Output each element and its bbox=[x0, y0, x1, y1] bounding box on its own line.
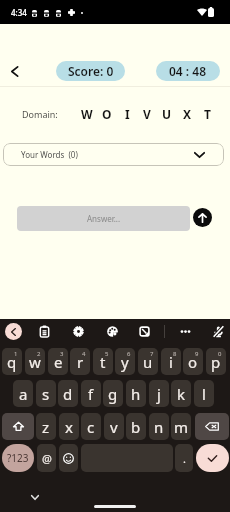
staticText: 6 bbox=[127, 350, 131, 358]
staticText: 0 bbox=[218, 350, 222, 358]
button[interactable]: x bbox=[59, 413, 79, 440]
staticText: 7 bbox=[150, 350, 154, 358]
button[interactable]: Voice input off bbox=[209, 322, 227, 340]
button[interactable]: f bbox=[81, 380, 101, 407]
button[interactable]: s bbox=[36, 380, 56, 407]
staticText: m bbox=[174, 417, 189, 437]
staticText: e bbox=[54, 352, 63, 372]
staticText: y bbox=[121, 352, 129, 372]
button[interactable]: r bbox=[70, 348, 90, 375]
staticText: x bbox=[65, 417, 73, 437]
staticText: 1 bbox=[14, 350, 18, 358]
staticText: I bbox=[125, 106, 130, 121]
staticText: g bbox=[108, 384, 118, 404]
staticText: @ bbox=[42, 451, 52, 466]
button[interactable]: g bbox=[103, 380, 123, 407]
staticText: i bbox=[169, 352, 173, 372]
staticText: u bbox=[143, 352, 153, 372]
button[interactable]: @ bbox=[37, 444, 56, 472]
staticText: r bbox=[77, 352, 84, 372]
staticText: W bbox=[81, 106, 93, 121]
button[interactable]: Theme bbox=[103, 322, 121, 340]
button[interactable]: p bbox=[206, 348, 226, 375]
staticText: k bbox=[177, 384, 186, 404]
button[interactable]: u bbox=[138, 348, 158, 375]
staticText: Domain: bbox=[22, 108, 58, 120]
button[interactable]: Emoji bbox=[59, 444, 78, 472]
staticText: . bbox=[183, 451, 186, 466]
staticText: U bbox=[162, 106, 172, 121]
button[interactable]: Sticker bbox=[135, 322, 153, 340]
staticText: n bbox=[154, 417, 164, 437]
button[interactable]: j bbox=[149, 380, 169, 407]
button[interactable]: Your Words (0) bbox=[3, 143, 224, 166]
button[interactable]: h bbox=[126, 380, 146, 407]
button[interactable]: ?123 bbox=[2, 444, 34, 472]
button[interactable]: More options bbox=[176, 322, 194, 340]
staticText: a bbox=[19, 384, 28, 404]
button[interactable]: k bbox=[171, 380, 191, 407]
button[interactable]: Enter bbox=[196, 444, 229, 472]
staticText: 9 bbox=[195, 350, 199, 358]
button[interactable]: Score: 0 bbox=[56, 61, 125, 81]
staticText: 4 bbox=[82, 350, 86, 358]
staticText: l bbox=[202, 384, 206, 404]
staticText: Answer... bbox=[87, 213, 121, 224]
staticText: V bbox=[143, 106, 151, 121]
button[interactable]: i bbox=[161, 348, 181, 375]
button[interactable]: w bbox=[25, 348, 45, 375]
button[interactable]: Back bbox=[3, 60, 25, 82]
button[interactable]: Clipboard bbox=[35, 322, 53, 340]
staticText: c bbox=[87, 417, 95, 437]
button[interactable]: y bbox=[115, 348, 135, 375]
staticText: O bbox=[102, 106, 112, 121]
button[interactable]: a bbox=[13, 380, 33, 407]
other: Hide keyboard bbox=[31, 495, 39, 500]
button[interactable]: m bbox=[171, 413, 191, 440]
staticText: Your Words (0) bbox=[21, 149, 78, 160]
button[interactable]: e bbox=[48, 348, 68, 375]
button[interactable]: Answer... bbox=[17, 206, 190, 231]
button[interactable]: c bbox=[81, 413, 101, 440]
button[interactable]: b bbox=[126, 413, 146, 440]
staticText: q bbox=[7, 352, 17, 372]
button[interactable]: Close keyboard toolbar bbox=[5, 323, 22, 340]
button[interactable]: 04 : 48 bbox=[156, 61, 220, 81]
staticText: v bbox=[110, 417, 118, 437]
staticText: h bbox=[131, 384, 141, 404]
button[interactable]: Backspace bbox=[195, 413, 229, 440]
staticText: 8 bbox=[173, 350, 177, 358]
button[interactable]: v bbox=[104, 413, 124, 440]
staticText: d bbox=[63, 384, 73, 404]
staticText: ?123 bbox=[7, 451, 29, 465]
staticText: 04 : 48 bbox=[169, 63, 207, 79]
staticText: 4:34 bbox=[11, 7, 27, 18]
button[interactable]: z bbox=[36, 413, 56, 440]
button[interactable]: . bbox=[175, 444, 193, 472]
staticText: 5 bbox=[105, 350, 109, 358]
button[interactable]: l bbox=[194, 380, 214, 407]
button[interactable]: d bbox=[58, 380, 78, 407]
staticText: z bbox=[42, 417, 50, 437]
button[interactable]: t bbox=[93, 348, 113, 375]
button[interactable]: q bbox=[2, 348, 22, 375]
staticText: Score: 0 bbox=[68, 63, 114, 79]
button[interactable]: n bbox=[149, 413, 169, 440]
staticText: o bbox=[188, 352, 198, 372]
button[interactable]: Settings bbox=[69, 322, 87, 340]
staticText: 3 bbox=[60, 350, 64, 358]
button[interactable]: Shift bbox=[2, 413, 34, 440]
staticText: b bbox=[131, 417, 141, 437]
staticText: j bbox=[157, 384, 161, 404]
staticText: 2 bbox=[37, 350, 41, 358]
staticText: T bbox=[204, 106, 211, 121]
staticText: f bbox=[88, 384, 94, 404]
staticText: p bbox=[211, 352, 221, 372]
button[interactable]: Submit bbox=[193, 208, 212, 227]
staticText: w bbox=[29, 352, 41, 372]
staticText: s bbox=[42, 384, 50, 404]
staticText: t bbox=[100, 352, 106, 372]
staticText: X bbox=[183, 106, 192, 121]
button[interactable]: o bbox=[183, 348, 203, 375]
